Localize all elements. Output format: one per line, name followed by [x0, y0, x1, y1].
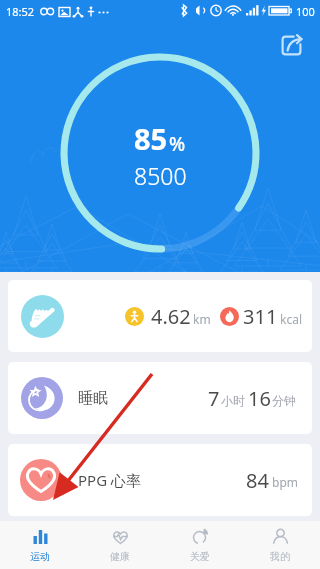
staticText: 睡眠	[78, 389, 108, 408]
staticText: 4.62	[151, 303, 191, 330]
staticText: 我的	[270, 550, 290, 563]
button[interactable]: 运动	[0, 521, 80, 569]
staticText: PPG 心率	[78, 470, 141, 490]
staticText: 关爱	[190, 550, 210, 563]
staticText: km	[193, 311, 211, 327]
staticText: 健康	[110, 550, 130, 563]
button[interactable]: 我的	[240, 521, 320, 569]
staticText: 小时	[221, 393, 245, 408]
staticText: %	[169, 131, 186, 157]
button[interactable]: 健康	[80, 521, 160, 569]
staticText: kcal	[280, 311, 302, 327]
staticText: 84	[246, 467, 269, 494]
staticText: bpm	[272, 474, 298, 490]
button[interactable]: Share	[274, 28, 308, 62]
staticText: 7	[208, 385, 220, 412]
button[interactable]: PPG 心率	[8, 444, 312, 516]
button[interactable]: 4.62	[8, 280, 312, 352]
button[interactable]: 关爱	[160, 521, 240, 569]
staticText: 分钟	[272, 393, 296, 408]
staticText: 运动	[30, 550, 50, 563]
staticText: 311	[243, 303, 278, 330]
staticText: 100	[296, 4, 315, 19]
staticText: 85	[134, 119, 168, 158]
button[interactable]: 睡眠	[8, 362, 312, 434]
staticText: 16	[248, 385, 271, 412]
staticText: 18:52	[6, 4, 35, 19]
staticText: 8500	[134, 160, 187, 191]
